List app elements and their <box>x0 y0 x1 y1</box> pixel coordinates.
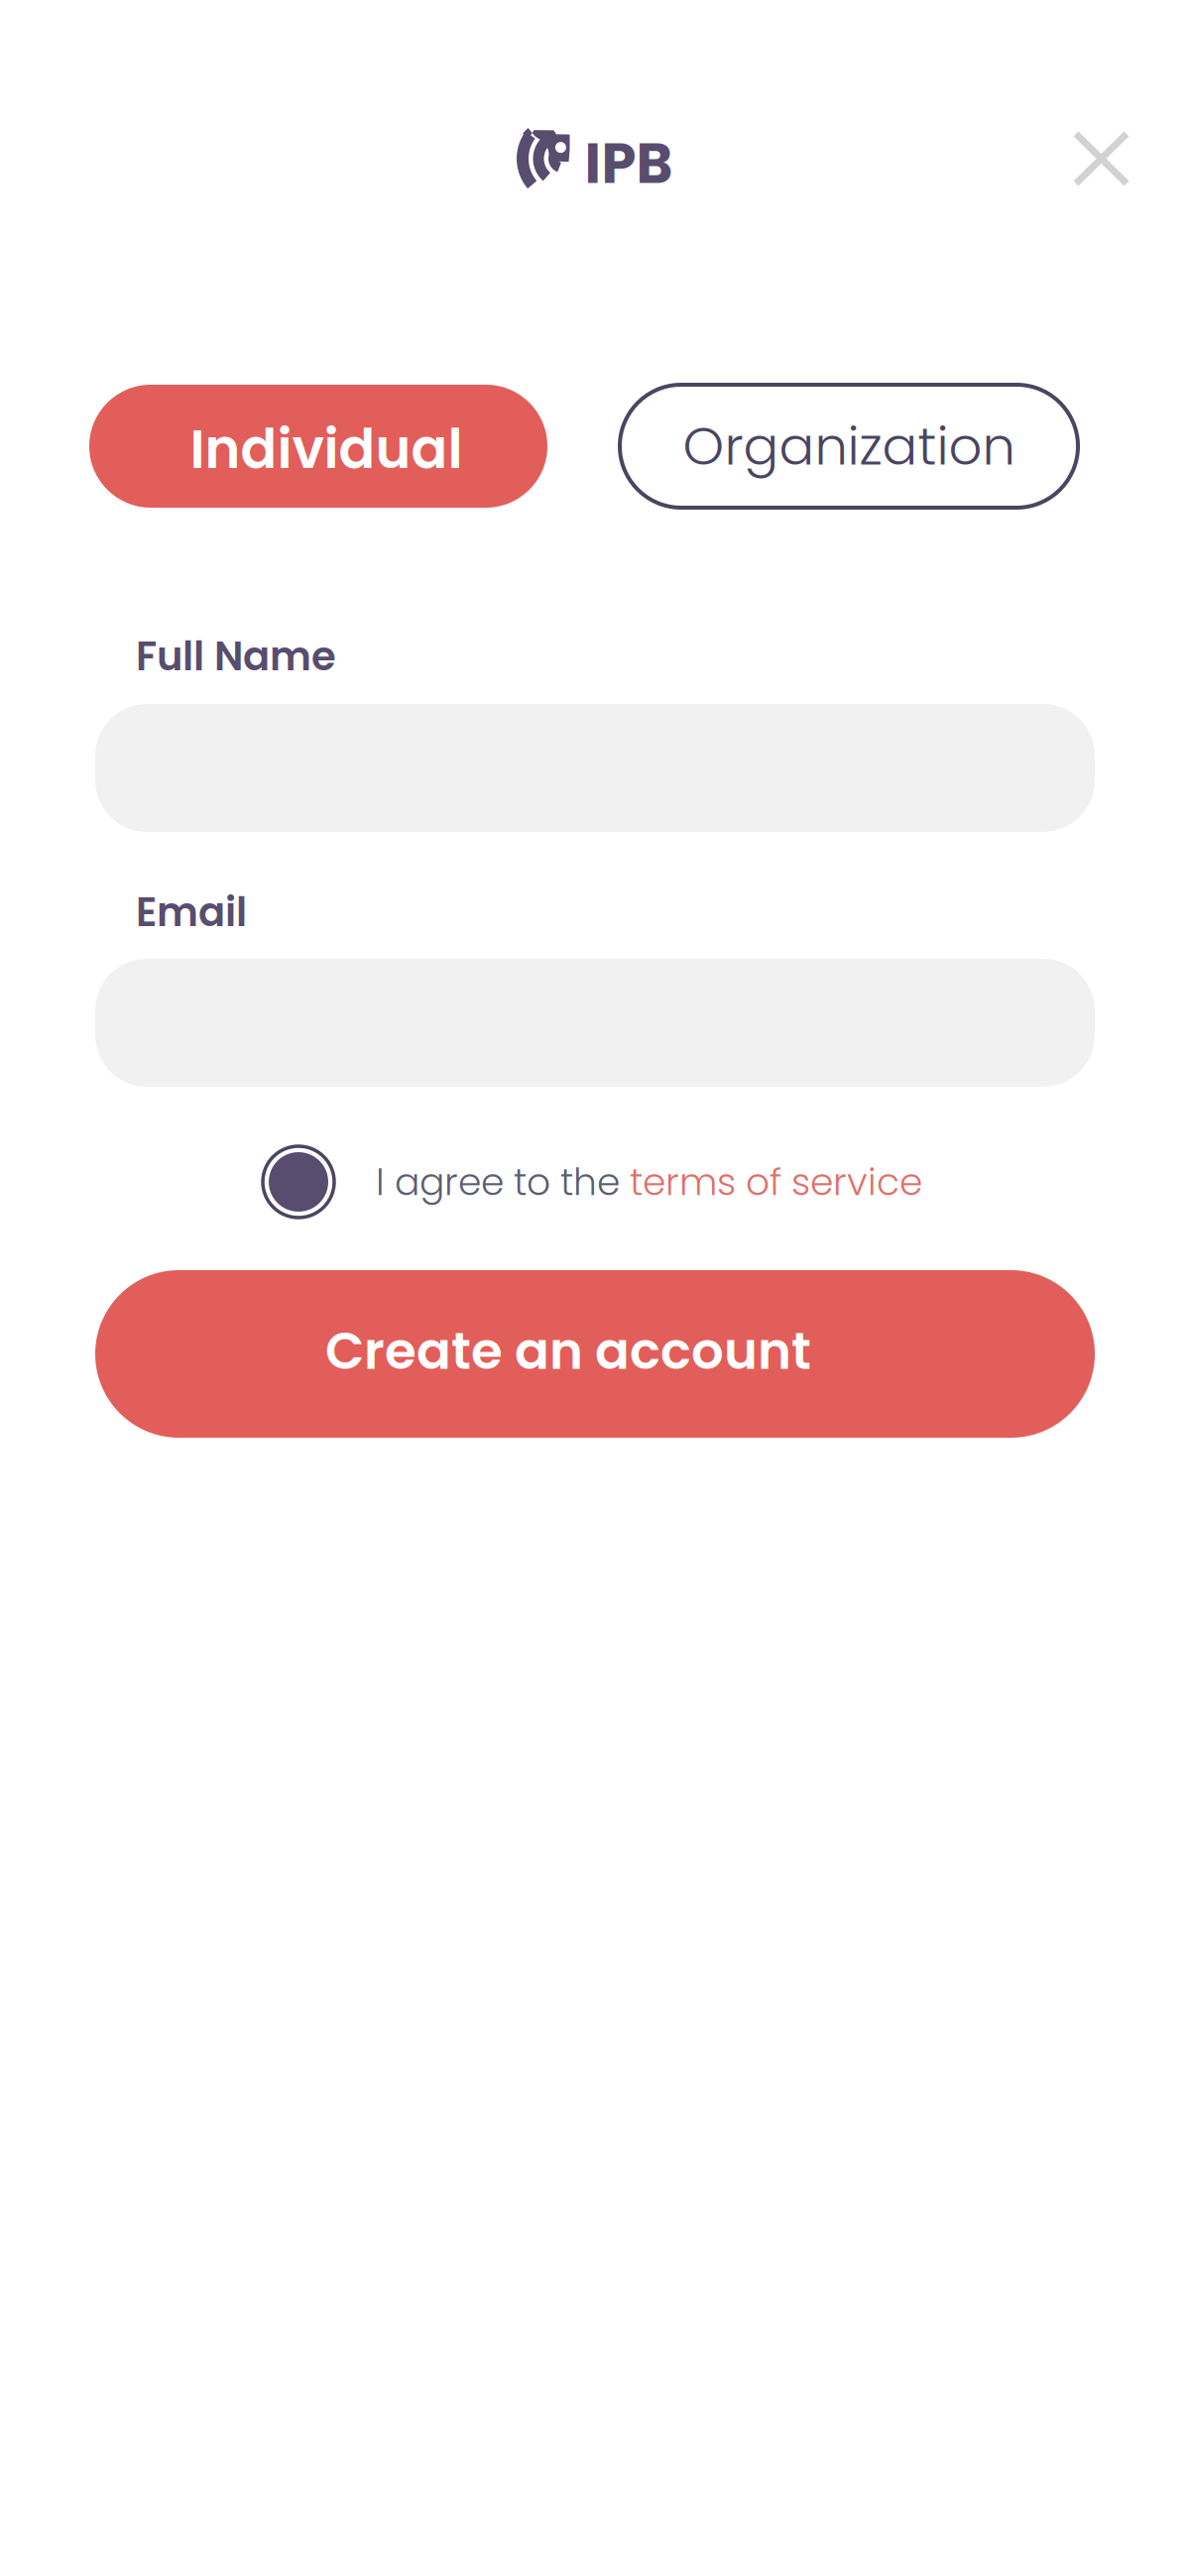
button[interactable]: Organization <box>620 385 1078 508</box>
staticText: I agree to the <box>376 1156 630 1208</box>
button[interactable]: I agree to the <box>261 1144 922 1220</box>
button[interactable]: Create an account <box>95 1270 1095 1438</box>
staticText: Full Name <box>136 629 336 684</box>
staticText: IPB <box>585 125 673 202</box>
button[interactable]: Close <box>1062 116 1140 201</box>
staticText: Organization <box>683 410 1015 483</box>
staticText: terms of service <box>630 1156 922 1208</box>
staticText: Create an account <box>325 1315 811 1387</box>
staticText: Email <box>136 884 247 940</box>
button[interactable]: Individual <box>89 385 547 508</box>
staticText: Individual <box>190 412 463 487</box>
